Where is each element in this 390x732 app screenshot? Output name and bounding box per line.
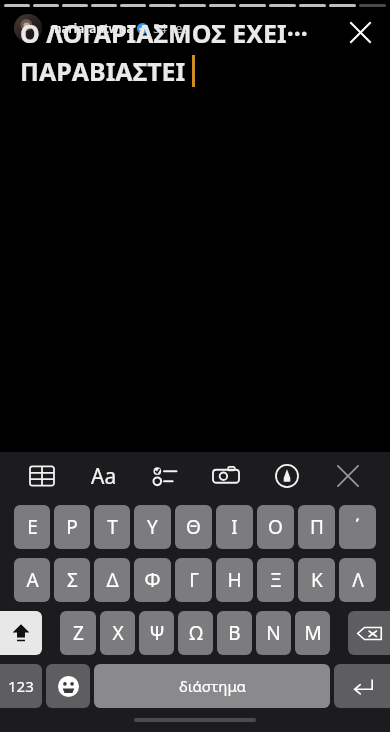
button[interactable]: ΄: [339, 505, 376, 549]
staticText: Ψ: [149, 620, 165, 646]
staticText: Ω: [189, 620, 203, 646]
button[interactable]: maria_antwna: [14, 14, 378, 42]
button[interactable]: Υ: [134, 505, 171, 549]
button[interactable]: Ω: [178, 611, 213, 655]
button[interactable]: Ξ: [257, 558, 294, 602]
staticText: Η: [227, 567, 242, 593]
button[interactable]: Ρ: [54, 505, 90, 549]
button[interactable]: Δ: [94, 558, 130, 602]
staticText: Ξ: [270, 567, 282, 593]
staticText: Aa: [91, 462, 117, 491]
staticText: Μ: [304, 620, 322, 646]
staticText: Β: [228, 620, 241, 646]
button[interactable]: Α: [14, 558, 50, 602]
staticText: Φ: [144, 567, 161, 593]
staticText: Ε: [27, 514, 38, 540]
staticText: Τ: [107, 514, 118, 540]
staticText: Ζ: [73, 620, 84, 646]
button[interactable]: Text style: [84, 456, 124, 496]
button[interactable]: Close: [342, 14, 378, 50]
staticText: 123: [8, 676, 34, 696]
staticText: Ρ: [66, 514, 78, 540]
button[interactable]: Camera: [206, 456, 246, 496]
button[interactable]: διάστημα: [94, 664, 330, 708]
staticText: Κ: [311, 567, 323, 593]
button[interactable]: Π: [298, 505, 335, 549]
staticText: ΠΑΡΑΒΙΑΣΤΕΙ: [20, 54, 186, 88]
staticText: Α: [26, 567, 39, 593]
staticText: Π: [310, 514, 324, 540]
staticText: 54 sec: [153, 20, 189, 36]
staticText: διάστημα: [179, 676, 246, 696]
button[interactable]: Enter: [334, 664, 390, 708]
staticText: Θ: [186, 514, 201, 540]
button[interactable]: Θ: [175, 505, 212, 549]
button[interactable]: Close keyboard: [328, 456, 368, 496]
button[interactable]: Ο: [257, 505, 294, 549]
button[interactable]: Table: [22, 456, 62, 496]
staticText: maria_antwna: [50, 20, 134, 36]
button[interactable]: Μ: [295, 611, 330, 655]
staticText: Χ: [112, 620, 124, 646]
button[interactable]: Ι: [216, 505, 253, 549]
button[interactable]: Σ: [54, 558, 90, 602]
button[interactable]: Checklist: [145, 456, 185, 496]
button[interactable]: Φ: [134, 558, 171, 602]
staticText: Δ: [106, 567, 119, 593]
staticText: ΄: [355, 514, 360, 540]
button[interactable]: Η: [216, 558, 253, 602]
button[interactable]: 123: [0, 664, 42, 708]
button[interactable]: Τ: [94, 505, 130, 549]
button[interactable]: Β: [217, 611, 252, 655]
staticText: Γ: [189, 567, 199, 593]
button[interactable]: Emoji: [46, 664, 90, 708]
staticText: Ν: [266, 620, 281, 646]
staticText: Ι: [231, 514, 238, 540]
button[interactable]: Ν: [256, 611, 291, 655]
button[interactable]: Ζ: [60, 611, 96, 655]
button[interactable]: Ψ: [139, 611, 174, 655]
staticText: Ο: [268, 514, 283, 540]
button[interactable]: Draw: [267, 456, 307, 496]
button[interactable]: Κ: [298, 558, 335, 602]
staticText: Λ: [352, 567, 364, 593]
button[interactable]: Backspace: [348, 611, 390, 655]
button[interactable]: Ε: [14, 505, 50, 549]
button[interactable]: Γ: [175, 558, 212, 602]
staticText: Υ: [147, 514, 158, 540]
button[interactable]: Χ: [100, 611, 135, 655]
staticText: Ο ΛΟΓΑΡΙΑΣΜΟΣ ΕΧΕΙ···: [20, 16, 308, 50]
staticText: Σ: [67, 567, 78, 593]
button[interactable]: Λ: [339, 558, 376, 602]
button[interactable]: Shift: [0, 611, 42, 655]
